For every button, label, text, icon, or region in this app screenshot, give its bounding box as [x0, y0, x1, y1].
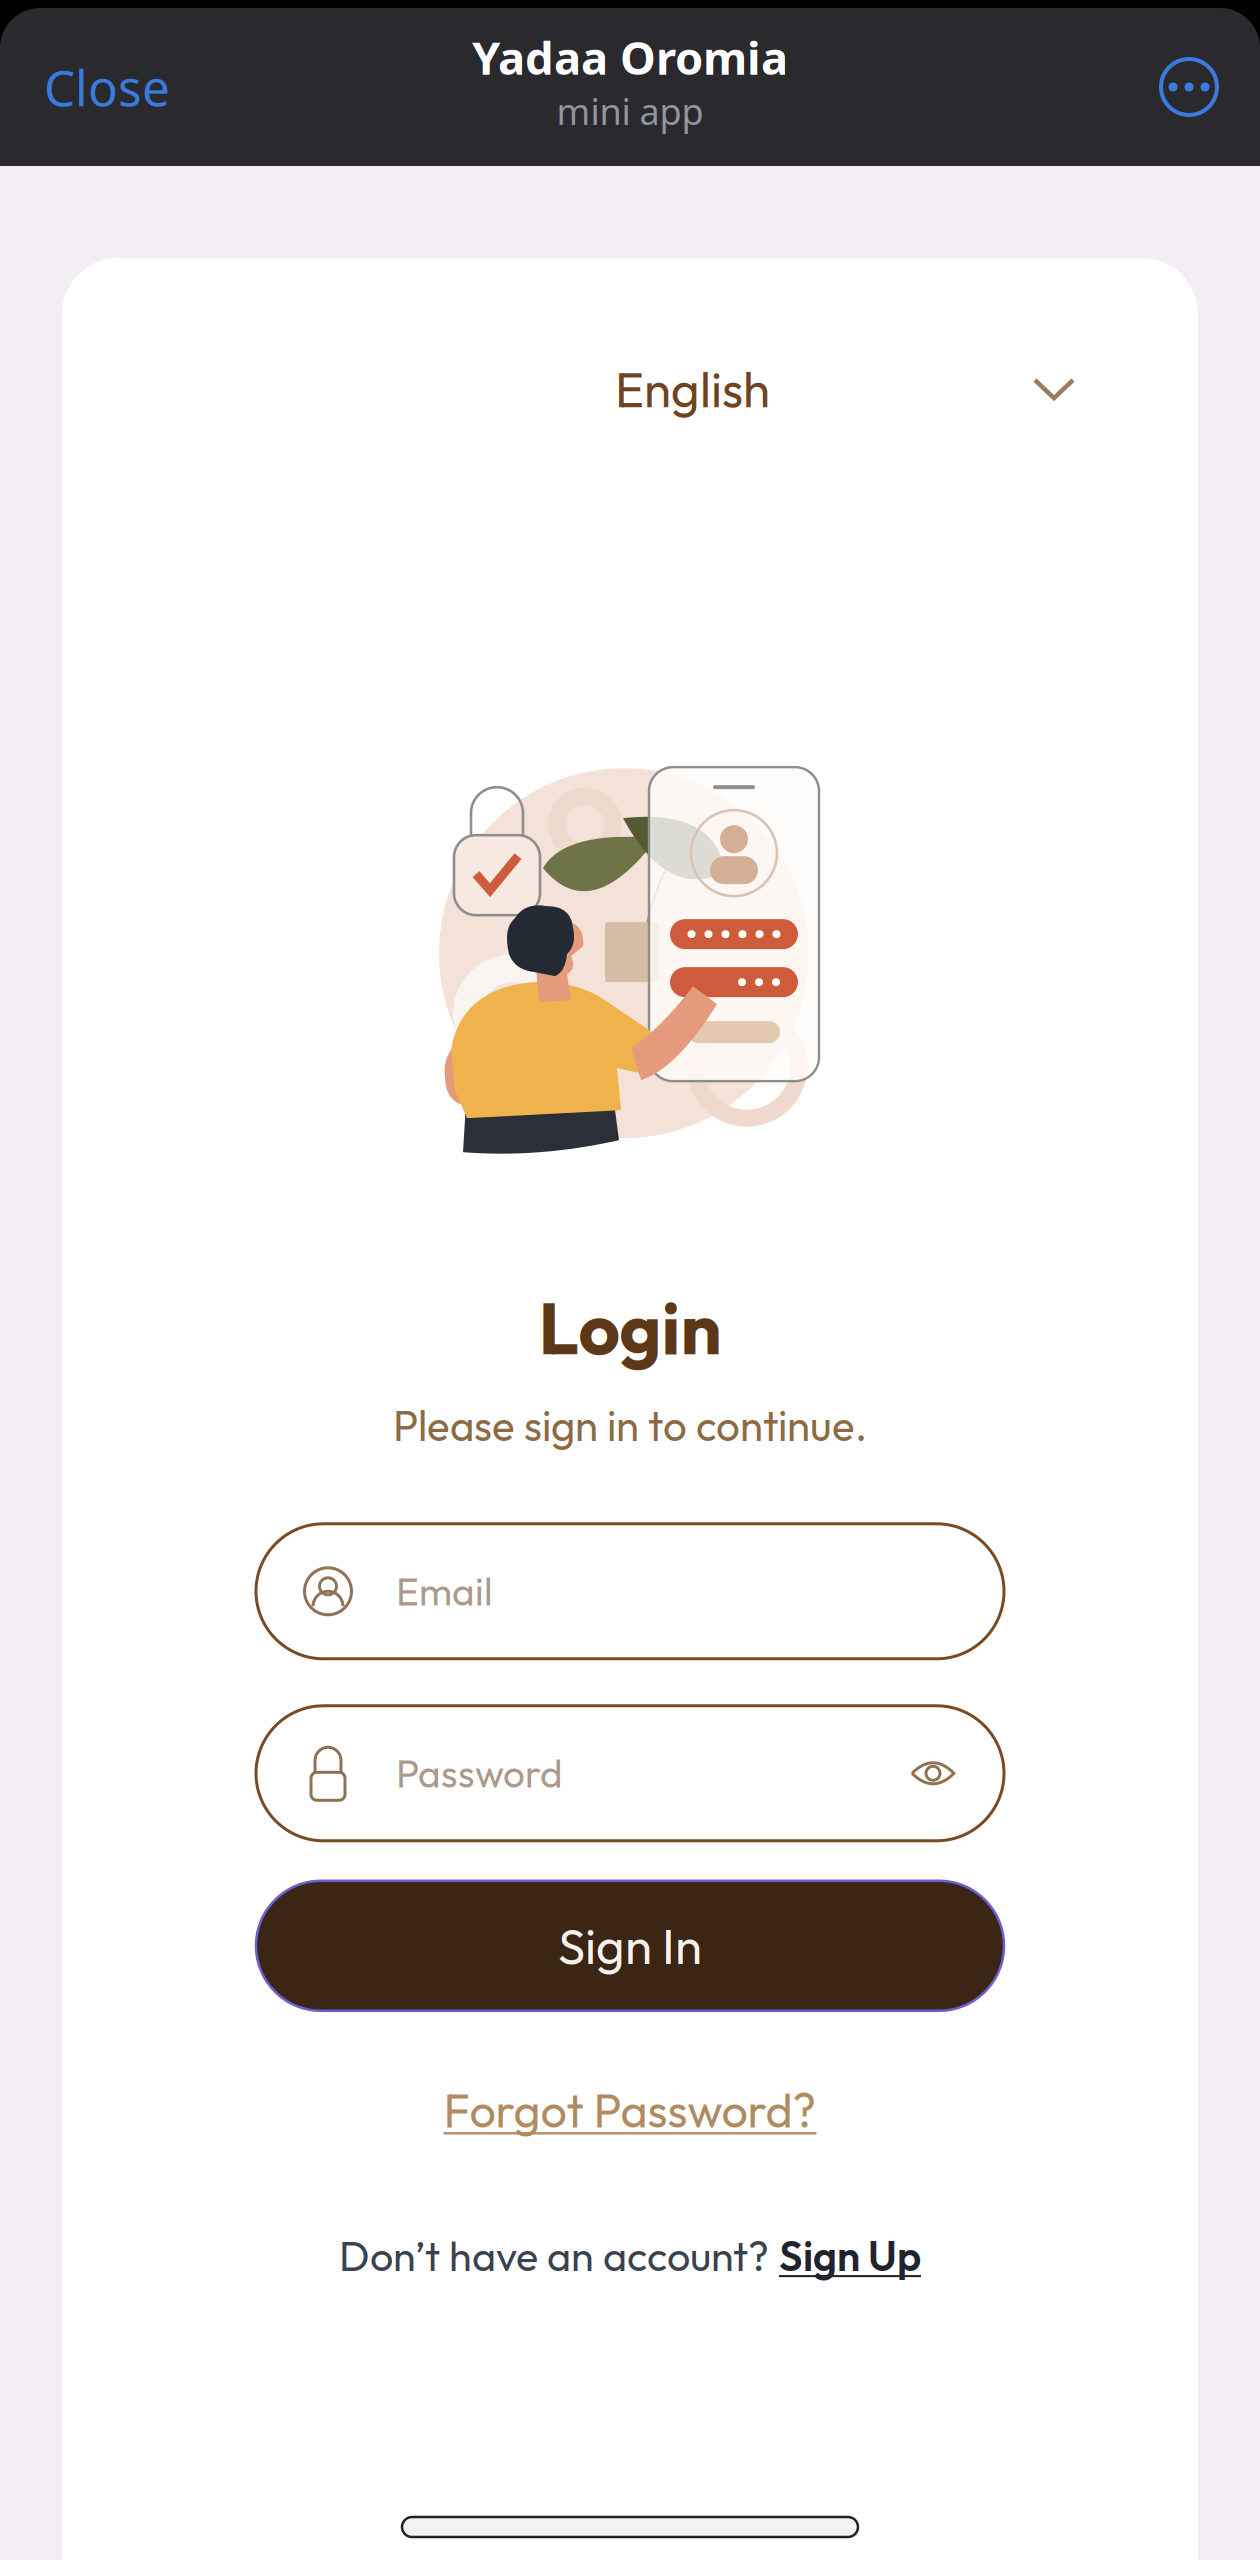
button[interactable]: Sign In	[62, 1881, 1198, 2011]
button[interactable]: Show password	[910, 1750, 956, 1796]
staticText: Email	[396, 1567, 493, 1616]
staticText: mini app	[556, 87, 703, 135]
staticText: Yadaa Oromia	[472, 27, 788, 87]
staticText: English	[615, 358, 770, 420]
staticText: Don’t have an account?	[339, 2230, 769, 2282]
staticText: Password	[396, 1749, 563, 1798]
staticText: Forgot Password?	[443, 2081, 816, 2140]
staticText: Please sign in to continue.	[393, 1399, 867, 1452]
button[interactable]: Don’t have an account?	[339, 2216, 921, 2296]
staticText: Sign In	[558, 1915, 702, 1977]
button[interactable]: Close	[0, 34, 214, 140]
staticText: Sign Up	[779, 2230, 921, 2282]
staticText: Close	[44, 54, 170, 120]
staticText: Login	[538, 1282, 721, 1373]
button[interactable]: English	[615, 336, 1076, 442]
button[interactable]: More options	[1144, 42, 1234, 132]
button[interactable]: Forgot Password?	[443, 2067, 816, 2154]
